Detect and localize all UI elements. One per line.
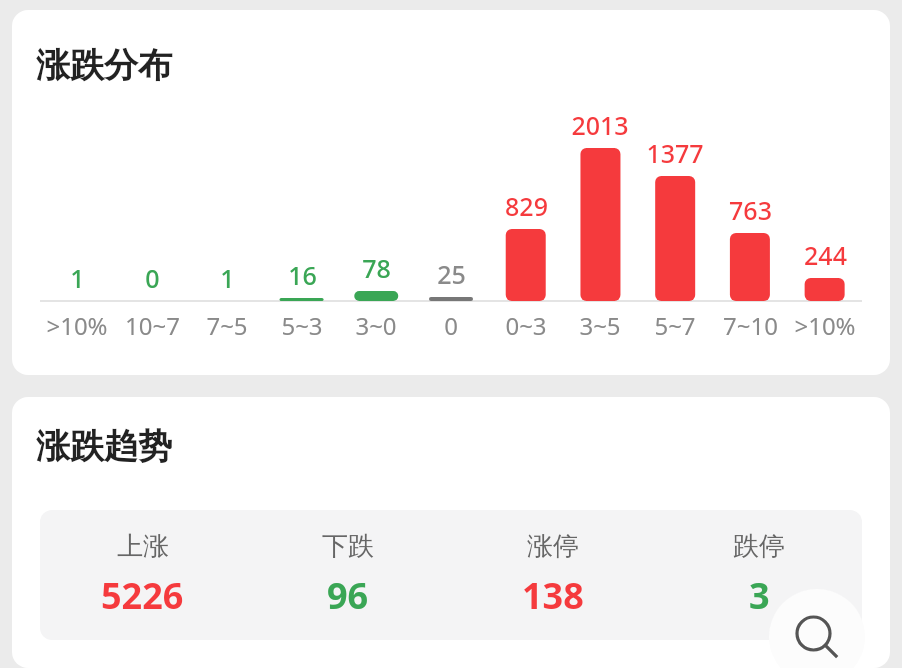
staticText: 10~7 (125, 309, 180, 342)
staticText: >10% (46, 309, 108, 342)
staticText: 7~10 (723, 309, 778, 342)
button[interactable]: 涨跌趋势 (12, 397, 890, 668)
staticText: 96 (327, 571, 369, 620)
button[interactable]: Search (769, 589, 865, 668)
staticText: 3~0 (355, 309, 397, 342)
button[interactable]: 涨跌分布 (12, 10, 890, 375)
button[interactable]: 上涨 (40, 510, 245, 640)
staticText: >10% (794, 309, 856, 342)
staticText: 1 (220, 261, 235, 295)
staticText: 763 (729, 193, 772, 227)
staticText: 涨跌分布 (36, 44, 172, 87)
staticText: 78 (362, 251, 391, 285)
staticText: 下跌 (322, 530, 374, 563)
staticText: 上涨 (117, 530, 169, 563)
staticText: 25 (437, 257, 466, 291)
staticText: 涨跌趋势 (36, 425, 172, 468)
staticText: 244 (804, 238, 847, 272)
staticText: 0~3 (505, 309, 547, 342)
staticText: 0 (145, 261, 160, 295)
staticText: 7~5 (206, 309, 248, 342)
staticText: 跌停 (733, 530, 785, 563)
button[interactable]: 下跌 (245, 510, 450, 640)
button[interactable]: 涨停 (450, 510, 656, 640)
staticText: 1377 (646, 136, 704, 170)
staticText: 5~3 (281, 309, 323, 342)
staticText: 涨停 (527, 530, 579, 563)
staticText: 5~7 (654, 309, 696, 342)
staticText: 1 (70, 261, 85, 295)
staticText: 829 (505, 189, 548, 223)
staticText: 2013 (571, 108, 629, 142)
staticText: 5226 (101, 571, 184, 620)
staticText: 138 (522, 571, 584, 620)
button[interactable]: 跌停 (656, 510, 862, 640)
staticText: 3~5 (579, 309, 621, 342)
staticText: 3 (749, 571, 770, 620)
staticText: 0 (444, 309, 458, 342)
staticText: 16 (288, 258, 317, 292)
